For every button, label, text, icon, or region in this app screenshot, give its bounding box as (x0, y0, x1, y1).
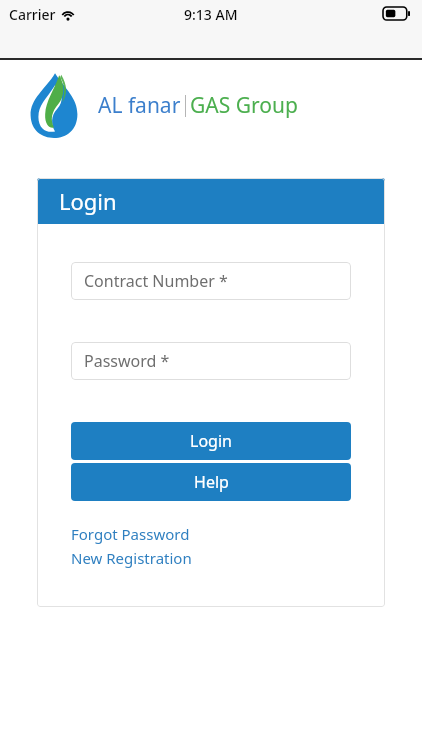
staticText: Password * (84, 350, 170, 372)
staticText: Login (59, 186, 117, 216)
button[interactable]: New Registration (71, 547, 192, 569)
staticText: AL fanar (98, 91, 181, 120)
staticText: Login (190, 430, 232, 452)
staticText: Help (194, 471, 229, 493)
button[interactable]: Help (71, 463, 351, 501)
button[interactable]: Login (71, 422, 351, 460)
staticText: GAS Group (190, 91, 298, 120)
staticText: Carrier (9, 5, 56, 24)
button[interactable]: Forgot Password (71, 523, 190, 545)
button[interactable]: Contract Number * (71, 262, 351, 300)
staticText: Contract Number * (84, 270, 228, 292)
staticText: New Registration (71, 548, 192, 568)
staticText: Forgot Password (71, 524, 190, 544)
staticText: 9:13 AM (184, 5, 238, 24)
button[interactable]: Password * (71, 342, 351, 380)
